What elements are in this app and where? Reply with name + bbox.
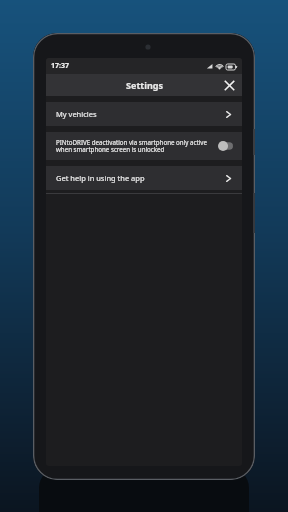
staticText: Get help in using the app (56, 173, 224, 183)
staticText: PINtoDRIVE deactivation via smartphone o… (56, 138, 211, 154)
staticText: 17:37 (51, 61, 69, 71)
button[interactable]: Get help in using the app (46, 166, 242, 190)
button[interactable]: PINtoDRIVE deactivation via smartphone o… (46, 132, 242, 160)
button[interactable]: Close (216, 74, 242, 96)
button[interactable]: My vehicles (46, 102, 242, 126)
staticText: My vehicles (56, 109, 224, 119)
button[interactable]: Toggle PINtoDRIVE screen-unlock requirem… (217, 140, 234, 152)
staticText: Settings (126, 79, 163, 91)
